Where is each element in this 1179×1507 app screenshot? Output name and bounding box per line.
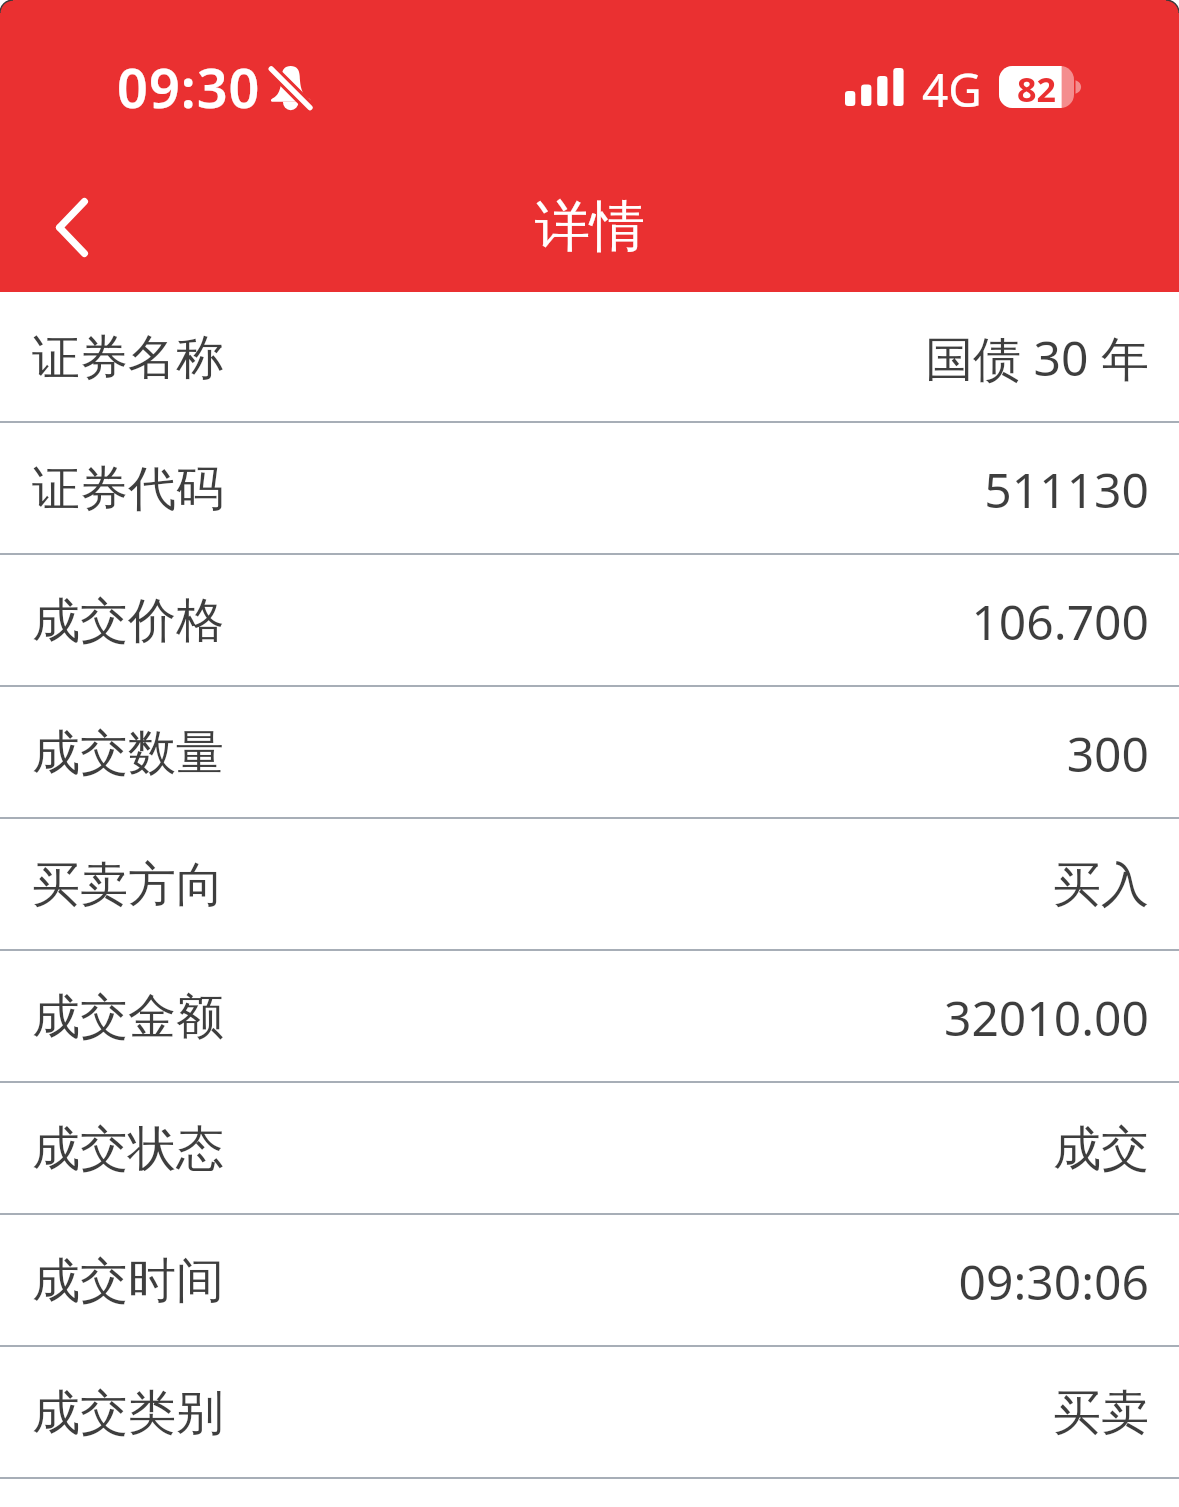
staticText: 成交时间 (32, 1251, 224, 1311)
staticText: 成交价格 (32, 591, 224, 651)
staticText: 证券代码 (32, 459, 224, 519)
staticText: 511130 (984, 457, 1149, 522)
button[interactable]: 买卖方向 (0, 819, 1179, 951)
staticText: 成交类别 (32, 1383, 224, 1443)
staticText: 09:30:06 (958, 1249, 1149, 1314)
staticText: 买卖 (1053, 1383, 1149, 1443)
staticText: 300 (1066, 721, 1149, 786)
staticText: 4G (922, 58, 982, 121)
staticText: 32010.00 (943, 985, 1149, 1050)
staticText: 国债 30 年 (925, 325, 1149, 391)
button[interactable]: 成交状态 (0, 1083, 1179, 1215)
staticText: 证券名称 (32, 328, 224, 388)
staticText: 成交数量 (32, 723, 224, 783)
button[interactable]: 成交数量 (0, 687, 1179, 819)
button[interactable]: 成交类别 (0, 1347, 1179, 1479)
staticText: 成交金额 (32, 987, 224, 1047)
staticText: 成交 (1053, 1119, 1149, 1179)
button[interactable]: 成交价格 (0, 555, 1179, 687)
button[interactable]: 成交时间 (0, 1215, 1179, 1347)
button[interactable]: Back (16, 162, 128, 292)
staticText: 82 (1017, 66, 1056, 108)
staticText: 买入 (1053, 855, 1149, 915)
staticText: 成交状态 (32, 1119, 224, 1179)
staticText: 09:30 (117, 50, 261, 124)
staticText: 详情 (535, 192, 645, 261)
staticText: 买卖方向 (32, 855, 224, 915)
button[interactable]: 成交金额 (0, 951, 1179, 1083)
button[interactable]: 证券代码 (0, 423, 1179, 555)
button[interactable]: 证券名称 (0, 292, 1179, 423)
staticText: 106.700 (971, 589, 1149, 654)
